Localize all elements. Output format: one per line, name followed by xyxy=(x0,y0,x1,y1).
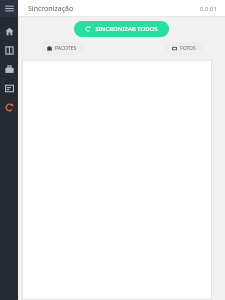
button[interactable]: Reports xyxy=(0,82,18,95)
button[interactable]: Sync xyxy=(0,101,18,114)
button[interactable]: SINCRONIZAR TODOS xyxy=(74,21,169,37)
staticText: SINCRONIZAR TODOS xyxy=(95,25,158,33)
staticText: PACOTES xyxy=(55,45,77,52)
staticText: 0.0.01 xyxy=(200,5,217,13)
button[interactable]: FOTOS xyxy=(165,42,203,55)
staticText: FOTOS xyxy=(180,45,196,52)
staticText: Sincronização xyxy=(28,4,74,14)
button[interactable]: Catalog xyxy=(0,44,18,57)
button[interactable]: PACOTES xyxy=(40,42,84,55)
button[interactable]: Home xyxy=(0,25,18,38)
button[interactable]: Menu xyxy=(0,0,18,17)
button[interactable]: Orders xyxy=(0,63,18,76)
